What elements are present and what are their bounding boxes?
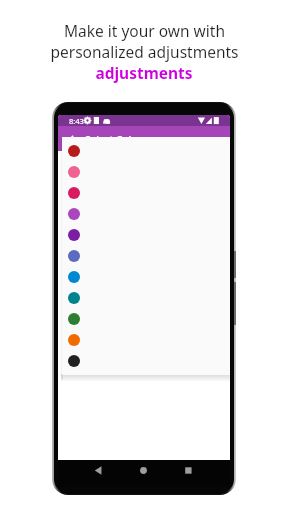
button[interactable] <box>62 182 230 203</box>
button[interactable] <box>62 350 230 371</box>
button[interactable] <box>62 140 230 161</box>
button[interactable] <box>62 203 230 224</box>
button[interactable] <box>62 224 230 245</box>
staticText: Select Color <box>85 133 142 147</box>
button[interactable] <box>62 161 230 182</box>
staticText: Make it your own with <box>64 20 225 41</box>
button[interactable]: Back <box>62 131 80 149</box>
staticText: 8:43 <box>69 116 84 126</box>
button[interactable] <box>62 245 230 266</box>
button[interactable] <box>62 287 230 308</box>
staticText: personalized adjustments <box>50 41 239 62</box>
staticText: adjustments <box>95 62 193 83</box>
button[interactable] <box>62 266 230 287</box>
button[interactable] <box>62 329 230 350</box>
button[interactable] <box>62 308 230 329</box>
